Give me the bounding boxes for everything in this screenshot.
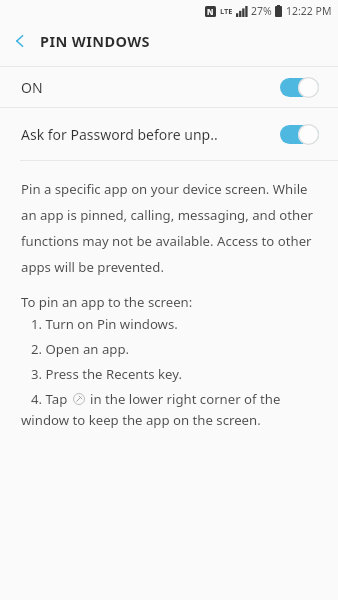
staticText: N bbox=[207, 6, 214, 17]
staticText: 2. Open an app. bbox=[31, 340, 130, 358]
staticText: PIN WINDOWS bbox=[40, 31, 151, 51]
button[interactable]: ON bbox=[0, 67, 338, 107]
button[interactable]: Back bbox=[0, 22, 40, 60]
staticText: in the lower right corner of the bbox=[90, 390, 281, 408]
staticText: 27% bbox=[251, 4, 272, 18]
staticText: 4. Tap bbox=[31, 390, 68, 408]
staticText: Ask for Password before unp.. bbox=[21, 125, 280, 144]
staticText: 12:22 PM bbox=[286, 4, 332, 18]
other: Toggle bbox=[280, 77, 319, 98]
button[interactable]: Ask for Password before unp.. bbox=[0, 108, 338, 160]
staticText: LTE bbox=[220, 6, 233, 16]
staticText: window to keep the app on the screen. bbox=[21, 411, 261, 429]
staticText: 3. Press the Recents key. bbox=[31, 365, 182, 383]
staticText: Pin a specific app on your device screen… bbox=[21, 180, 320, 276]
staticText: ON bbox=[21, 78, 280, 97]
staticText: To pin an app to the screen: bbox=[21, 293, 193, 311]
other: Toggle bbox=[280, 124, 319, 145]
staticText: 1. Turn on Pin windows. bbox=[31, 315, 178, 333]
